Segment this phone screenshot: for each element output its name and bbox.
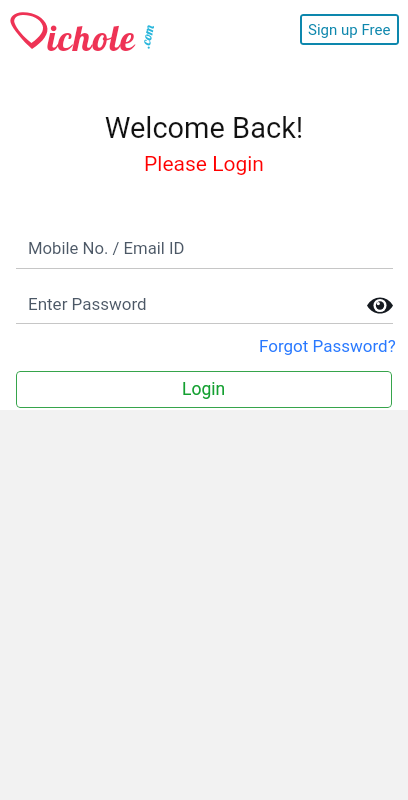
staticText: Welcome Back!	[0, 111, 408, 145]
button[interactable]: Show password	[364, 290, 396, 320]
button[interactable]: Forgot Password?	[256, 333, 399, 359]
button[interactable]: Login	[16, 371, 392, 408]
staticText: Please Login	[0, 152, 408, 177]
staticText: Sign up Free	[308, 21, 391, 39]
button[interactable]: Sign up Free	[300, 14, 399, 45]
staticText: Login	[182, 379, 226, 400]
staticText: Forgot Password?	[259, 336, 396, 356]
staticText: Mobile No. / Email ID	[28, 239, 185, 259]
button[interactable]: Mobile No. / Email ID	[16, 232, 393, 269]
staticText: Enter Password	[28, 294, 147, 314]
button[interactable]: Enter Password	[16, 287, 393, 324]
button[interactable]: Vichole.com logo	[4, 6, 164, 56]
staticText: .com	[137, 23, 157, 49]
staticText: ichole	[47, 15, 136, 60]
